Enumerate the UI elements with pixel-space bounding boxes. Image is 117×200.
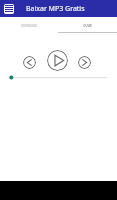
button[interactable]: Play [47,50,68,71]
button[interactable]: Menu [4,4,14,14]
staticText: DOWNLOAD [21,24,37,28]
button[interactable]: Previous [23,56,36,69]
button[interactable]: Next [78,56,91,69]
button[interactable]: DOWNLOAD [0,17,58,33]
button[interactable]: OUVIR [58,17,117,33]
staticText: Baixar MP3 Gratis [26,4,85,14]
staticText: OUVIR [83,24,92,28]
